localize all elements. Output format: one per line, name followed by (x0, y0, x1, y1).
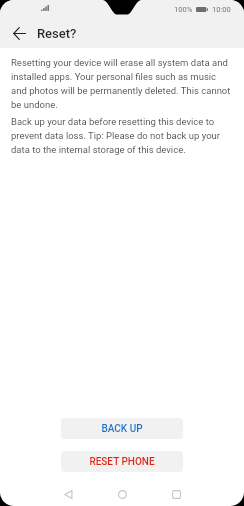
button[interactable]: RESET PHONE (61, 451, 183, 472)
button[interactable]: BACK UP (61, 418, 183, 439)
staticText: Reset? (37, 26, 77, 41)
staticText: BACK UP (101, 423, 143, 435)
staticText: 10:00 (212, 5, 231, 14)
staticText: Resetting your device will erase all sys… (11, 57, 233, 110)
staticText: 100% (174, 5, 193, 14)
staticText: Back up your data before resetting this … (11, 116, 233, 155)
button[interactable]: Back (7, 21, 31, 45)
button[interactable]: Recents (160, 482, 192, 506)
button[interactable]: Back (52, 482, 84, 506)
staticText: RESET PHONE (89, 456, 155, 468)
button[interactable]: Home (106, 482, 138, 506)
